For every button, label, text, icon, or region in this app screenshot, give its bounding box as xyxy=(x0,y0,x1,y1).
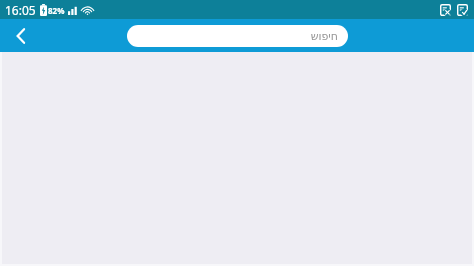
button[interactable]: חיפוש xyxy=(127,25,348,47)
button[interactable]: Back xyxy=(0,19,42,52)
staticText: 16:05 xyxy=(5,2,36,18)
staticText: חיפוש xyxy=(310,30,338,43)
staticText: 82% xyxy=(48,5,65,16)
